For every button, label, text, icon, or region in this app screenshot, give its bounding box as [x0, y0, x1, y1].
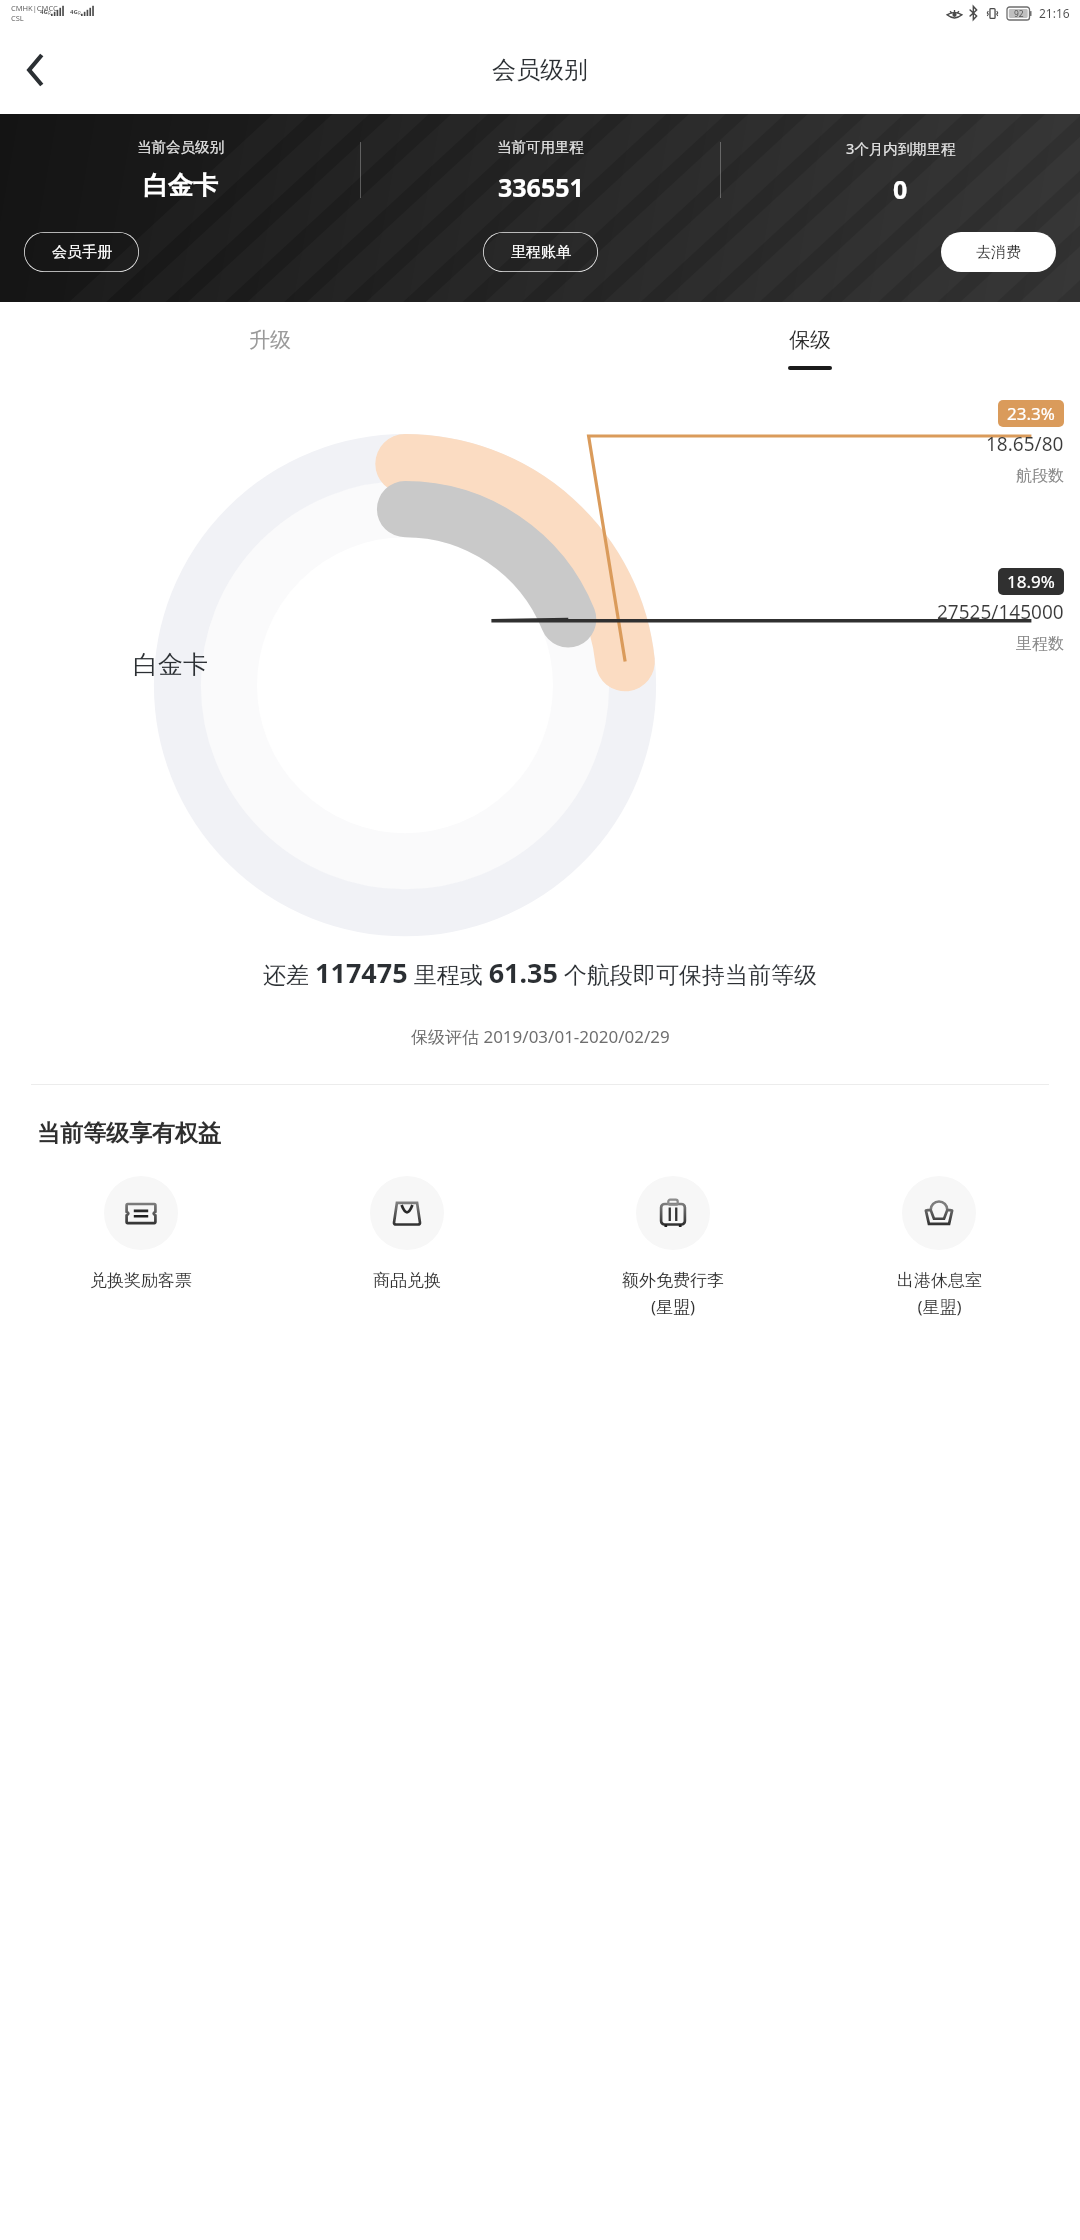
button[interactable]: 会员手册 — [24, 232, 139, 272]
staticText: 兑换奖励客票 — [90, 1270, 192, 1291]
staticText: 白金卡 — [133, 649, 208, 680]
button[interactable]: 商品兑换 — [274, 1176, 540, 1291]
staticText: 27525/145000 — [937, 599, 1064, 625]
staticText: 4G — [70, 8, 78, 16]
staticText: 92 — [1014, 8, 1024, 20]
staticText: 升级 — [249, 327, 291, 353]
button[interactable]: Back — [0, 34, 72, 106]
staticText: 白金卡 — [143, 170, 218, 201]
button[interactable]: 去消费 — [941, 232, 1056, 272]
staticText: R — [48, 10, 51, 16]
staticText: 商品兑换 — [373, 1270, 441, 1291]
staticText: 出港休息室 (星盟) — [897, 1270, 982, 1318]
staticText: 里程账单 — [511, 243, 571, 262]
staticText: 保级 — [789, 327, 831, 353]
staticText: 当前可用里程 — [497, 138, 584, 156]
button[interactable]: 出港休息室 (星盟) — [806, 1176, 1072, 1318]
staticText: CSL — [11, 13, 24, 23]
staticText: R — [78, 10, 81, 16]
staticText: 保级评估 2019/03/01-2020/02/29 — [411, 1025, 670, 1048]
staticText: 当前等级享有权益 — [37, 1119, 221, 1148]
button[interactable]: 保级 — [540, 302, 1080, 394]
staticText: 4G — [40, 8, 48, 16]
staticText: 还差 117475 里程或 61.35 个航段即可保持当前等级 — [263, 954, 817, 991]
button[interactable]: 里程账单 — [483, 232, 598, 272]
staticText: CMHK|CMCC — [11, 3, 58, 13]
staticText: 里程数 — [1016, 634, 1064, 654]
staticText: 航段数 — [1016, 466, 1064, 486]
staticText: 会员手册 — [52, 243, 112, 262]
staticText: 336551 — [498, 170, 584, 204]
staticText: 18.9% — [1007, 570, 1055, 593]
button[interactable]: 额外免费行李 (星盟) — [540, 1176, 806, 1318]
staticText: 额外免费行李 (星盟) — [622, 1270, 724, 1318]
staticText: 去消费 — [976, 243, 1021, 262]
staticText: 23.3% — [1007, 402, 1055, 425]
staticText: 18.65/80 — [986, 431, 1064, 457]
staticText: 21:16 — [1039, 5, 1070, 21]
button[interactable]: 兑换奖励客票 — [8, 1176, 274, 1291]
staticText: 会员级别 — [492, 55, 588, 85]
button[interactable]: 升级 — [0, 302, 540, 394]
staticText: 0 — [893, 172, 908, 206]
staticText: 3个月内到期里程 — [846, 138, 956, 158]
staticText: 当前会员级别 — [137, 138, 224, 156]
